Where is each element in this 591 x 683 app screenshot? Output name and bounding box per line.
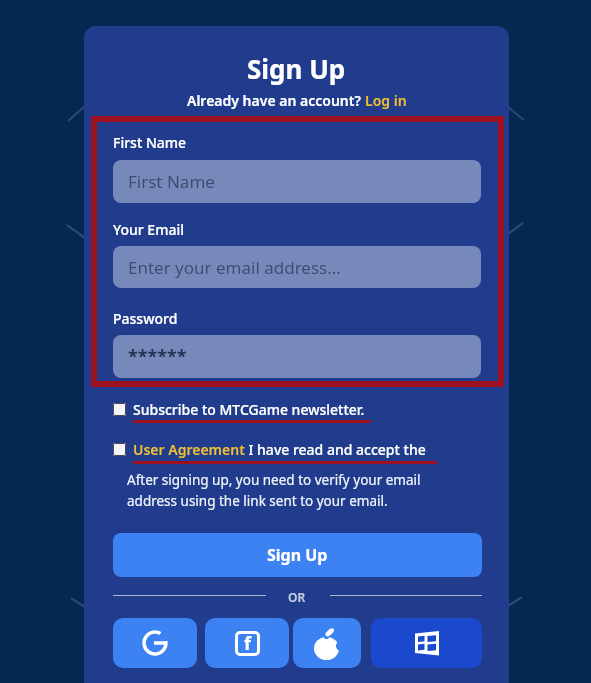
button[interactable]: Enter your email address... [113, 246, 481, 288]
button[interactable] [113, 618, 197, 668]
staticText: Subscribe to MTCGame newsletter. [133, 400, 365, 419]
staticText: After signing up, you need to verify you… [127, 471, 421, 510]
button[interactable]: f [205, 618, 289, 668]
button[interactable]: First Name [113, 160, 481, 203]
button[interactable]: Subscribe to MTCGame newsletter. [113, 400, 365, 419]
staticText: f [244, 631, 251, 656]
button[interactable]: User Agreement I have read and accept th… [113, 440, 426, 459]
staticText: OR [288, 589, 306, 605]
staticText: Sign Up [267, 544, 328, 566]
button[interactable]: Sign Up [113, 533, 482, 577]
staticText: First Name [113, 133, 187, 152]
button[interactable] [293, 618, 361, 668]
staticText: Sign Up [247, 51, 346, 86]
staticText: Password [113, 309, 178, 328]
staticText: First Name [128, 170, 215, 193]
staticText: Your Email [113, 220, 184, 239]
staticText: Already have an account? [187, 91, 365, 110]
button[interactable]: Log in [365, 91, 407, 110]
staticText: Log in [365, 91, 407, 110]
button[interactable]: ****** [113, 335, 481, 378]
button[interactable] [371, 618, 482, 668]
staticText: Enter your email address... [128, 256, 341, 279]
staticText: User Agreement I have read and accept th… [133, 440, 426, 459]
staticText: ****** [128, 344, 187, 369]
